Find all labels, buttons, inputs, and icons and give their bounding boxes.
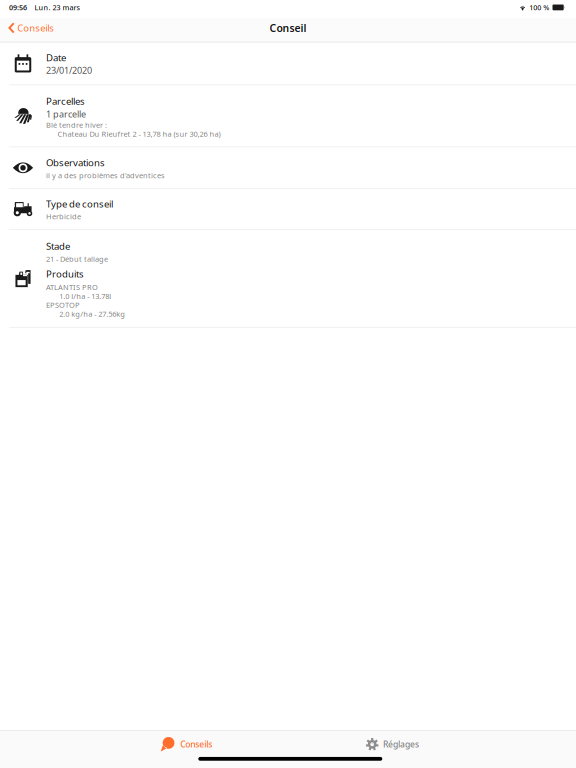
staticText: 100 %: [529, 2, 549, 12]
staticText: Produits: [46, 267, 84, 280]
staticText: Conseils: [180, 738, 212, 750]
staticText: 21 - Début tallage: [46, 254, 108, 264]
button[interactable]: Réglages: [358, 733, 427, 755]
staticText: Observations: [46, 156, 105, 169]
staticText: Type de conseil: [46, 197, 113, 210]
staticText: 09:56: [9, 2, 27, 12]
staticText: Réglages: [383, 738, 419, 750]
staticText: Parcelles: [46, 94, 85, 108]
staticText: Chateau Du Rieufret 2 - 13,78 ha (sur 30…: [58, 129, 221, 139]
staticText: 1.0 l/ha - 13.78l: [59, 291, 111, 301]
staticText: Conseils: [17, 21, 54, 34]
staticText: Blé tendre hiver :: [46, 120, 107, 130]
button[interactable]: Conseils: [152, 733, 220, 755]
staticText: EPSOTOP: [46, 300, 80, 310]
staticText: 2.0 kg/ha - 27.56kg: [59, 309, 125, 319]
staticText: Stade: [46, 240, 70, 253]
staticText: 1 parcelle: [46, 108, 86, 120]
staticText: ATLANTIS PRO: [46, 282, 98, 292]
staticText: il y a des problèmes d'adventices: [46, 170, 165, 180]
staticText: Herbicide: [46, 211, 81, 221]
staticText: Conseil: [269, 21, 306, 35]
staticText: Lun. 23 mars: [34, 2, 79, 12]
button[interactable]: Conseils: [0, 18, 60, 38]
staticText: 23/01/2020: [46, 64, 92, 76]
staticText: Date: [46, 51, 66, 64]
